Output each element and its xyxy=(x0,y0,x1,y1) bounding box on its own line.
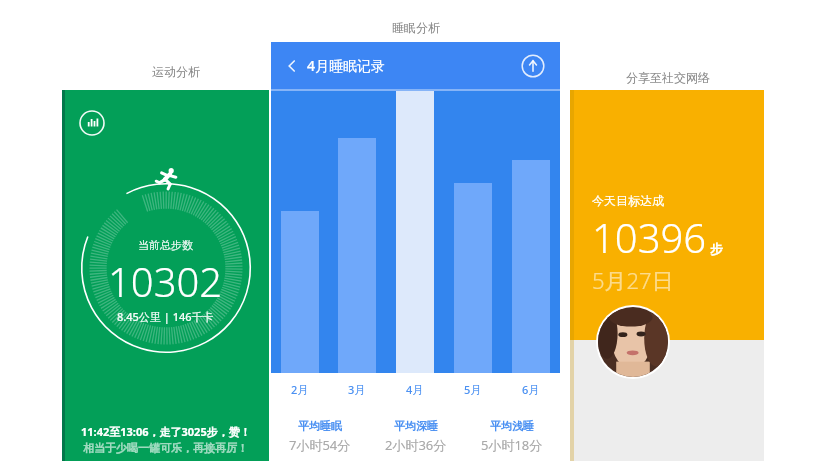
staticText: 平均浅睡 xyxy=(490,419,534,433)
staticText: 运动分析 xyxy=(136,64,216,79)
staticText: 5小时18分 xyxy=(481,436,543,454)
staticText: 10396 xyxy=(592,210,707,264)
staticText: 8.45公里 | 146千卡 xyxy=(117,309,214,324)
staticText: 10302 xyxy=(108,254,223,308)
button[interactable]: Activity chart xyxy=(62,90,269,461)
staticText: 5月 xyxy=(464,382,482,397)
staticText: 平均深睡 xyxy=(394,419,438,433)
staticText: 分享至社交网络 xyxy=(608,70,728,85)
staticText: 相当于少喝一罐可乐，再接再厉！ xyxy=(83,441,248,455)
staticText: 2小时36分 xyxy=(385,436,447,454)
staticText: 7小时54分 xyxy=(289,436,351,454)
staticText: 今天目标达成 xyxy=(592,193,664,208)
staticText: 4月 xyxy=(406,382,424,397)
button[interactable]: 今天目标达成 xyxy=(570,90,764,461)
button[interactable]: Back xyxy=(271,42,560,461)
staticText: 步 xyxy=(710,241,723,257)
staticText: 6月 xyxy=(522,382,540,397)
button[interactable]: Share xyxy=(521,54,545,78)
button[interactable]: 平均深睡 xyxy=(368,419,464,454)
button[interactable]: Activity chart xyxy=(79,110,105,136)
staticText: 11:42至13:06，走了3025步，赞！ xyxy=(81,424,251,439)
button[interactable]: 平均睡眠 xyxy=(271,419,368,454)
button[interactable]: 平均浅睡 xyxy=(464,419,560,454)
staticText: 3月 xyxy=(348,382,366,397)
button[interactable]: Back xyxy=(282,56,302,76)
staticText: 睡眠分析 xyxy=(376,20,456,35)
button[interactable]: Profile photo xyxy=(596,305,670,379)
staticText: 5月27日 xyxy=(592,265,674,295)
staticText: 平均睡眠 xyxy=(298,419,342,433)
staticText: 2月 xyxy=(291,382,309,397)
staticText: 当前总步数 xyxy=(138,238,193,252)
staticText: 4月睡眠记录 xyxy=(307,56,386,75)
